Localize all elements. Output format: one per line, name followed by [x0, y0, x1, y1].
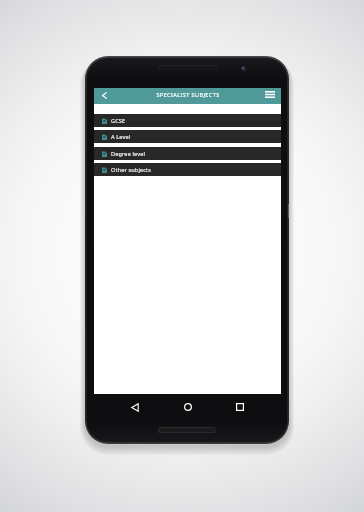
button[interactable]: Back: [126, 398, 144, 416]
button[interactable]: Degree level: [94, 147, 281, 160]
button[interactable]: A Level: [94, 130, 281, 143]
button[interactable]: Recents: [231, 398, 249, 416]
button[interactable]: GCSE: [94, 114, 281, 127]
staticText: Degree level: [111, 150, 146, 158]
button[interactable]: Back: [94, 88, 112, 104]
button[interactable]: Menu: [262, 88, 281, 104]
staticText: SPECIALIST SUBJECTS: [156, 91, 220, 98]
staticText: A Level: [111, 133, 131, 141]
button[interactable]: Home: [179, 398, 197, 416]
staticText: Other subjects: [111, 166, 152, 174]
staticText: GCSE: [111, 117, 126, 125]
button[interactable]: Other subjects: [94, 163, 281, 176]
